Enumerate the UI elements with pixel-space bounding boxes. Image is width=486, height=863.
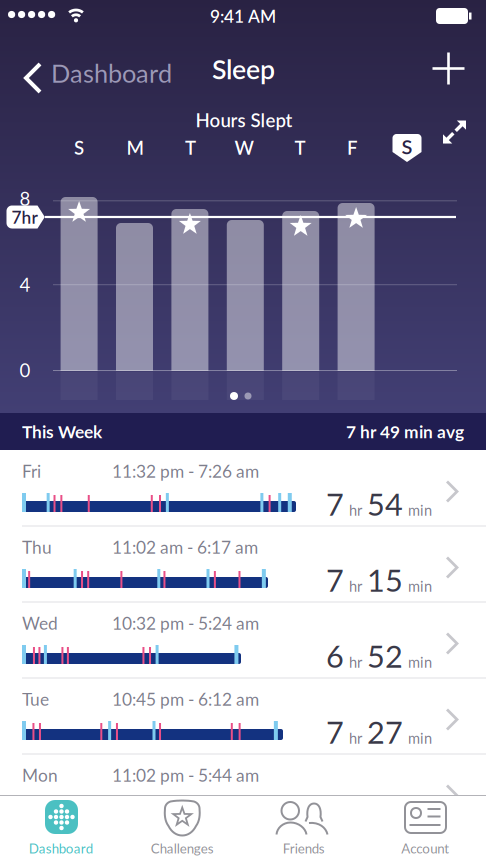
staticText: Thu [22,537,52,557]
staticText: 4 [19,274,30,295]
staticText: This Week [22,421,102,442]
staticText: min [408,578,432,595]
staticText: Mon [22,765,58,785]
staticText: min [408,806,432,823]
staticText: 11:02 pm - 5:44 am [112,765,259,785]
staticText: Wed [22,613,58,633]
staticText: 6 [326,638,344,674]
staticText: 9:41 AM [210,6,276,26]
button[interactable]: Saturday, selected [392,134,421,162]
staticText: hr [349,654,362,671]
button[interactable]: Account [364,795,486,863]
staticText: W [234,137,253,158]
staticText: min [408,730,432,747]
button[interactable]: Add sleep log [432,52,464,84]
staticText: Dashboard [29,840,93,856]
staticText: 10:45 pm - 6:12 am [112,689,259,709]
staticText: 11:02 am - 6:17 am [112,537,258,557]
staticText: 7 [326,486,344,522]
staticText: 52 [367,638,403,674]
button[interactable]: Friends [243,795,364,863]
staticText: 10:32 pm - 5:24 am [112,613,259,633]
staticText: F [347,137,358,158]
staticText: Sleep [212,53,275,85]
staticText: 27 [367,714,403,750]
staticText: Account [401,840,449,856]
staticText: min [408,502,432,519]
staticText: 7hr [11,207,37,227]
staticText: T [185,137,196,158]
staticText: 42 [367,790,403,826]
staticText: 0 [19,359,30,381]
button[interactable]: Dashboard [24,55,172,91]
staticText: 54 [367,486,403,522]
button[interactable]: Thu [0,526,486,602]
staticText: min [408,654,432,671]
button[interactable]: Tue [0,678,486,754]
staticText: Friends [283,840,325,856]
staticText: 15 [367,562,403,598]
staticText: 7 [326,562,344,598]
staticText: hr [349,502,362,519]
staticText: Tue [22,689,49,709]
staticText: 11:32 pm - 7:26 am [112,461,259,481]
staticText: hr [349,578,362,595]
button[interactable]: Mon [0,754,486,830]
staticText: 8 [19,188,30,209]
button[interactable]: Expand chart [443,120,466,143]
staticText: Fri [22,461,41,481]
staticText: S [401,135,412,158]
staticText: 7 hr 49 min avg [346,421,464,442]
staticText: M [126,137,143,158]
staticText: hr [349,730,362,747]
staticText: S [74,137,84,158]
staticText: 6 [326,790,344,826]
button[interactable]: Wed [0,602,486,678]
staticText: Dashboard [51,58,172,88]
button[interactable]: Challenges [121,795,243,863]
button[interactable]: Dashboard [0,795,121,863]
staticText: T [294,137,305,158]
staticText: 7 [326,714,344,750]
button[interactable]: Fri [0,450,486,526]
staticText: Challenges [151,840,214,856]
staticText: Hours Slept [195,109,292,131]
